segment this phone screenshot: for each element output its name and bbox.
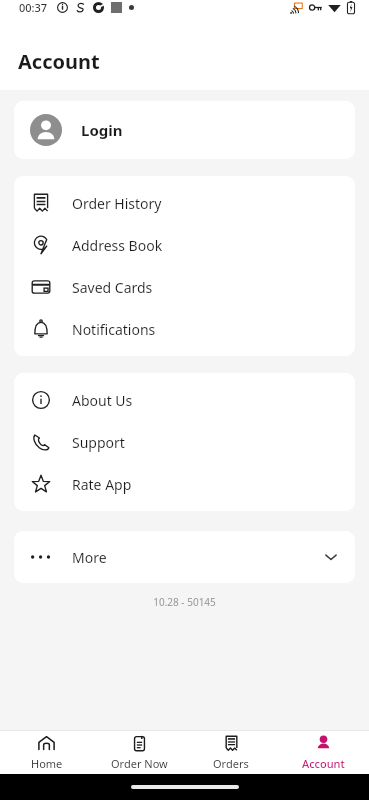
button[interactable]: Order History — [14, 182, 355, 224]
staticText: 00:37 — [19, 0, 48, 15]
staticText: Order History — [72, 194, 162, 213]
button[interactable]: Account — [277, 731, 369, 774]
button[interactable]: Notifications — [14, 308, 355, 350]
button[interactable]: Saved Cards — [14, 266, 355, 308]
button[interactable]: Rate App — [14, 463, 355, 505]
staticText: More — [72, 548, 107, 567]
staticText: Saved Cards — [72, 278, 153, 297]
button[interactable]: Home — [0, 731, 93, 774]
staticText: Notifications — [72, 320, 156, 339]
staticText: Account — [302, 756, 345, 771]
button[interactable]: Support — [14, 421, 355, 463]
staticText: Login — [81, 120, 123, 140]
staticText: Account — [18, 48, 100, 75]
button[interactable]: Order Now — [93, 731, 185, 774]
staticText: Support — [72, 433, 125, 452]
staticText: Orders — [213, 756, 249, 771]
button[interactable]: About Us — [14, 379, 355, 421]
button[interactable]: Login — [14, 101, 355, 159]
button[interactable]: More — [14, 531, 355, 583]
staticText: Home — [31, 756, 63, 771]
staticText: Order Now — [111, 756, 168, 771]
button[interactable]: Orders — [185, 731, 277, 774]
staticText: About Us — [72, 391, 133, 410]
staticText: Address Book — [72, 236, 163, 255]
staticText: 10.28 - 50145 — [153, 595, 216, 609]
button[interactable]: Address Book — [14, 224, 355, 266]
staticText: Rate App — [72, 475, 132, 494]
